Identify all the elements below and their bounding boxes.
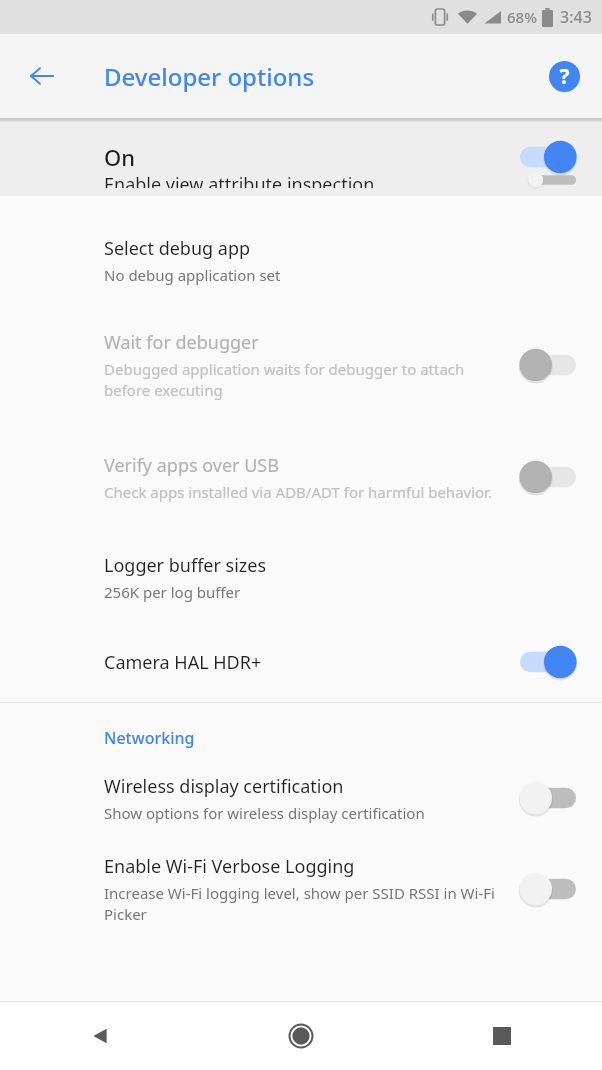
button[interactable]: Enable Wi-Fi Verbose Logging [0, 839, 602, 939]
staticText: Enable view attribute inspection [104, 172, 375, 188]
staticText: On [104, 142, 136, 172]
button[interactable]: Home [200, 1002, 401, 1070]
staticText: Check apps installed via ADB/ADT for har… [104, 482, 492, 502]
button[interactable]: Verify apps over USB [0, 422, 602, 532]
button[interactable]: Wireless display certification [0, 757, 602, 839]
staticText: Enable Wi-Fi Verbose Logging [104, 854, 355, 879]
staticText: No debug application set [104, 265, 281, 285]
staticText: 256K per log buffer [104, 582, 241, 602]
staticText: Increase Wi-Fi logging level, show per S… [104, 883, 502, 925]
button[interactable]: Wait for debugger [0, 308, 602, 422]
staticText: Developer options [104, 60, 315, 93]
staticText: Verify apps over USB [104, 453, 279, 478]
button[interactable]: Logger buffer sizes [0, 532, 602, 622]
button[interactable]: On [0, 118, 602, 196]
button[interactable]: Help [540, 52, 588, 100]
button[interactable]: Back [16, 50, 68, 102]
staticText: Logger buffer sizes [104, 553, 267, 578]
staticText: 3:43 [560, 6, 592, 28]
staticText: Select debug app [104, 236, 251, 261]
staticText: Networking [104, 727, 195, 749]
staticText: Wireless display certification [104, 774, 344, 799]
staticText: Wait for debugger [104, 330, 259, 355]
staticText: Debugged application waits for debugger … [104, 359, 502, 401]
staticText: ? [559, 62, 570, 91]
staticText: Show options for wireless display certif… [104, 803, 425, 823]
staticText: Camera HAL HDR+ [104, 650, 262, 675]
button[interactable]: Camera HAL HDR+ [0, 622, 602, 702]
button[interactable]: Recent apps [401, 1002, 602, 1070]
staticText: 68% [507, 7, 537, 27]
button[interactable]: Back [0, 1002, 200, 1070]
button[interactable]: Select debug app [0, 212, 602, 308]
